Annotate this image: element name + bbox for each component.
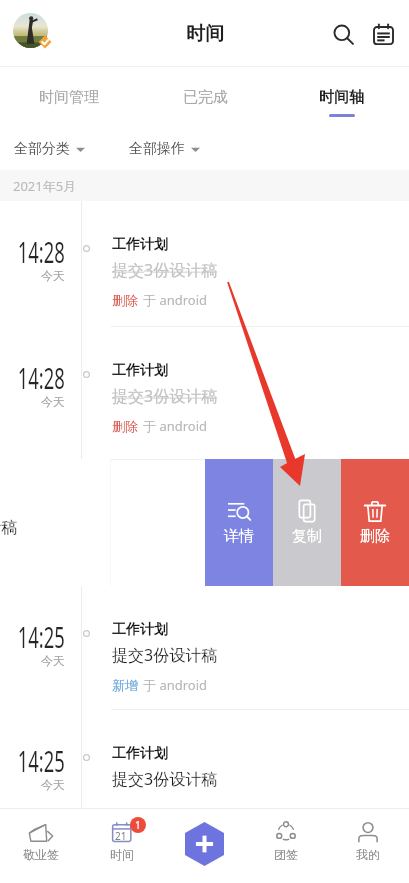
staticText: 21 [115,829,127,843]
button[interactable]: 敬业签 [0,808,81,883]
button[interactable]: 14:28 [0,201,409,326]
staticText: 详情 [224,527,254,546]
button[interactable]: 复制 [273,459,341,586]
button[interactable]: Calendar [363,14,403,54]
staticText: 14:28 [18,232,65,271]
button[interactable]: 删除 [341,459,409,586]
staticText: 于 android [143,676,208,694]
button[interactable]: 21 [81,808,163,883]
button[interactable]: 14:28 [0,327,409,459]
staticText: 今天 [41,653,65,668]
button[interactable]: Search [323,14,363,54]
staticText: 今天 [41,394,65,409]
button[interactable]: 团签 [245,808,327,883]
staticText: 时间 [110,847,134,862]
staticText: 提交3份设计稿 [112,768,218,790]
staticText: 今天 [41,777,65,792]
staticText: 工作计划 [112,236,168,254]
staticText: 14:25 [18,617,65,656]
staticText: 于 android [143,291,208,309]
staticText: 删除 [360,527,390,546]
button[interactable]: Add [185,822,224,866]
staticText: 工作计划 [112,621,168,639]
staticText: 已完成 [183,88,228,107]
staticText: 我的 [356,847,380,862]
button[interactable]: 全部操作 [129,133,200,165]
button[interactable]: 14:25 [0,586,409,709]
staticText: 删除 [112,418,138,434]
staticText: 14:25 [18,741,65,780]
button[interactable]: 14:25 [0,710,409,838]
staticText: 提交3份设计稿 [112,644,218,666]
staticText: 全部操作 [129,140,185,158]
staticText: 2021年5月 [13,177,77,195]
button[interactable]: 详情 [205,459,273,586]
staticText: 敬业签 [23,847,59,862]
staticText: 工作计划 [112,745,168,763]
staticText: 时间轴 [319,88,364,107]
button[interactable]: 时间轴 [273,67,409,127]
staticText: 全部分类 [14,140,70,158]
button[interactable]: 提交3份设计稿 [0,459,205,586]
staticText: 新增 [112,677,138,693]
staticText: 提交3份设计稿 [112,259,218,281]
staticText: 14:28 [18,358,65,397]
staticText: 今天 [41,268,65,283]
staticText: 时间 [186,22,224,46]
staticText: 提交3份设计稿 [112,385,218,407]
button[interactable]: 时间管理 [0,67,137,127]
staticText: 于 android [143,417,208,435]
staticText: 团签 [274,847,298,862]
button[interactable]: 全部分类 [14,133,85,165]
staticText: 1 [135,818,141,832]
button[interactable]: Profile [13,13,55,55]
button[interactable]: 已完成 [137,67,273,127]
staticText: 时间管理 [39,88,99,107]
button[interactable]: 我的 [327,808,409,883]
staticText: 提交3份设计稿 [0,516,18,538]
staticText: 复制 [292,527,322,546]
staticText: 工作计划 [112,362,168,380]
staticText: 删除 [112,292,138,308]
